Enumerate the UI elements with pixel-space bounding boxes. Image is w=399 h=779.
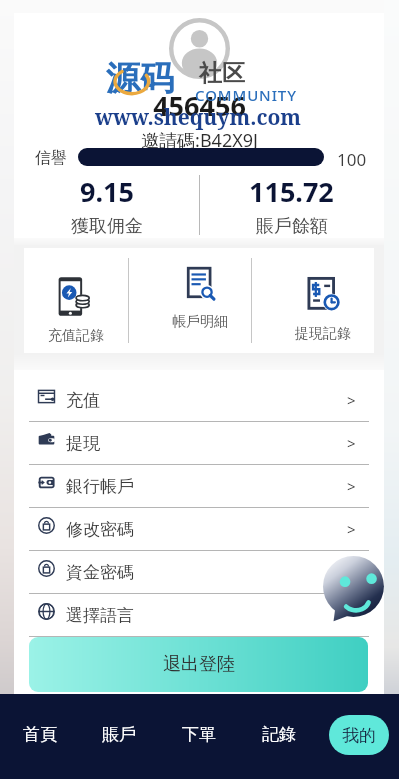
staticText: 我的	[342, 725, 376, 746]
staticText: 充值記錄	[48, 327, 104, 345]
staticText: 帳戶明細	[172, 313, 228, 331]
staticText: 首頁	[23, 724, 57, 745]
button[interactable]: 下單	[159, 694, 239, 779]
button[interactable]: 115.72	[199, 172, 384, 238]
button[interactable]: 選擇語言	[29, 594, 369, 636]
button[interactable]: Customer service chat	[323, 556, 391, 624]
button[interactable]: 賬戶	[79, 694, 159, 779]
staticText: 100	[337, 148, 367, 166]
staticText: 提現	[66, 433, 100, 454]
button[interactable]: 記錄	[239, 694, 319, 779]
staticText: >	[347, 476, 356, 496]
button[interactable]: 資金密碼	[29, 551, 369, 593]
button[interactable]: 我的	[319, 694, 399, 779]
staticText: www.shequym.com	[95, 103, 302, 132]
staticText: 提現記錄	[295, 325, 351, 343]
staticText: 賬戶餘額	[256, 215, 328, 238]
button[interactable]: 首頁	[0, 694, 79, 779]
staticText: 修改密碼	[66, 519, 134, 540]
button[interactable]: 退出登陸	[29, 637, 368, 692]
staticText: 選擇語言	[66, 605, 134, 626]
staticText: 充值	[66, 390, 100, 411]
button[interactable]: 帳戶明細	[138, 248, 261, 353]
staticText: 信譽	[35, 148, 67, 166]
button[interactable]: 9.15	[14, 172, 199, 238]
staticText: 賬戶	[102, 724, 136, 745]
button[interactable]: 提現	[29, 422, 369, 464]
staticText: >	[347, 390, 356, 410]
staticText: 下單	[182, 724, 216, 745]
staticText: 115.72	[249, 173, 334, 210]
staticText: 記錄	[262, 724, 296, 745]
staticText: 退出登陸	[163, 653, 235, 676]
button[interactable]: 提現記錄	[261, 248, 384, 353]
staticText: 資金密碼	[66, 562, 134, 583]
staticText: 9.15	[80, 173, 134, 210]
staticText: 獲取佣金	[71, 215, 143, 238]
staticText: 銀行帳戶	[66, 476, 134, 497]
staticText: COMMUNITY	[195, 85, 297, 105]
button[interactable]: 銀行帳戶	[29, 465, 369, 507]
staticText: 源码	[106, 57, 174, 100]
button[interactable]: 修改密碼	[29, 508, 369, 550]
staticText: 社区	[199, 59, 245, 88]
button[interactable]: 充值	[29, 379, 369, 421]
staticText: >	[347, 433, 356, 453]
staticText: 456456	[153, 87, 246, 124]
staticText: >	[347, 519, 356, 539]
staticText: 邀請碼:B42X9J	[141, 128, 258, 153]
button[interactable]: 充值記錄	[14, 248, 138, 353]
